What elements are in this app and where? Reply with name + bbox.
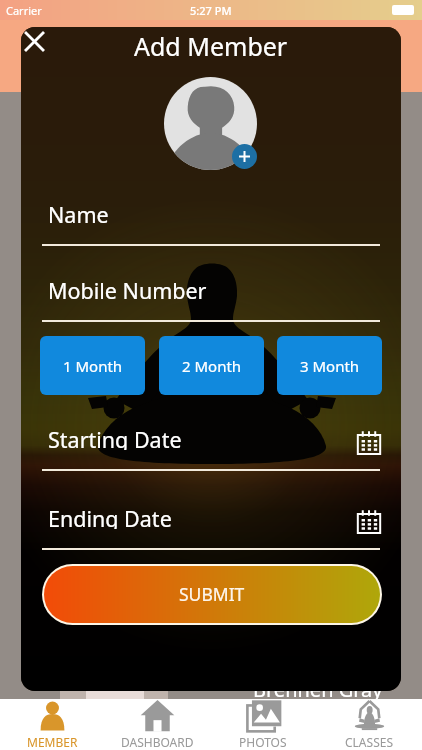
- button[interactable]: 1 Month: [40, 336, 145, 395]
- staticText: PHOTOS: [239, 734, 287, 750]
- staticText: Carrier: [6, 3, 42, 18]
- staticText: Name: [48, 200, 390, 225]
- staticText: DASHBOARD: [121, 734, 194, 750]
- staticText: CLASSES: [345, 734, 393, 750]
- button[interactable]: SUBMIT: [44, 566, 380, 623]
- button[interactable]: PHOTOS: [210, 699, 316, 750]
- staticText: Ending Date: [48, 504, 364, 529]
- button[interactable]: DASHBOARD: [105, 699, 210, 750]
- button[interactable]: Starting Date: [40, 428, 382, 471]
- staticText: Brennen Gray: [253, 676, 383, 703]
- button[interactable]: MEMBER: [0, 699, 105, 750]
- button[interactable]: Close: [21, 27, 52, 59]
- staticText: Mobile Number: [48, 276, 390, 301]
- button[interactable]: Name: [40, 203, 382, 246]
- staticText: 2 Month: [182, 356, 242, 376]
- staticText: SUBMIT: [179, 582, 245, 606]
- staticText: Starting Date: [48, 425, 364, 450]
- button[interactable]: Mobile Number: [40, 279, 382, 322]
- staticText: 3 Month: [300, 356, 360, 376]
- staticText: 5:27 PM: [190, 3, 232, 18]
- staticText: Add Member: [134, 29, 288, 63]
- staticText: 1 Month: [63, 356, 123, 376]
- button[interactable]: 3 Month: [277, 336, 382, 395]
- button[interactable]: CLASSES: [316, 699, 422, 750]
- staticText: MEMBER: [27, 734, 78, 750]
- button[interactable]: 2 Month: [159, 336, 264, 395]
- button[interactable]: Add photo: [232, 144, 257, 169]
- button[interactable]: Ending Date: [40, 507, 382, 550]
